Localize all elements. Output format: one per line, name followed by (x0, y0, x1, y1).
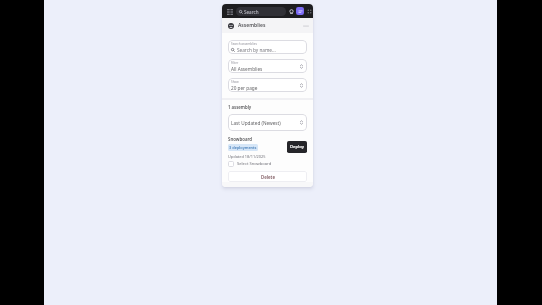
staticText: Delete (261, 174, 275, 180)
button[interactable]: Apps (306, 8, 312, 14)
button[interactable]: More options (302, 22, 309, 29)
staticText: All Assemblies (231, 66, 263, 72)
button[interactable]: Show (228, 78, 307, 92)
staticText: Deploy (290, 144, 304, 150)
staticText: Select Snowboard (237, 161, 272, 167)
staticText: Assemblies (238, 22, 266, 29)
staticText: Last Updated (Newest) (231, 120, 281, 126)
staticText: Filter (231, 61, 239, 65)
staticText: Show (231, 80, 239, 84)
staticText: Search (244, 9, 259, 15)
button[interactable]: Filter (228, 59, 307, 73)
staticText: Search assemblies (231, 42, 257, 46)
button[interactable]: Notifications (288, 8, 294, 14)
button[interactable]: Deploy (287, 141, 307, 153)
staticText: Search by name... (237, 47, 276, 53)
button[interactable]: Last Updated (Newest) (228, 114, 307, 131)
staticText: Snowboard (228, 136, 253, 142)
button[interactable]: Account (296, 7, 304, 15)
button[interactable]: Search (236, 7, 286, 16)
staticText: Updated 18/11/2025 (228, 154, 266, 159)
button[interactable]: Select Snowboard (228, 161, 272, 167)
staticText: 20 per page (231, 85, 258, 91)
staticText: 1 assembly (228, 104, 252, 110)
button[interactable]: Search assemblies (228, 40, 307, 54)
staticText: 3 deployments (229, 145, 257, 150)
button[interactable]: Menu (226, 8, 233, 15)
button[interactable]: Delete (228, 171, 307, 182)
